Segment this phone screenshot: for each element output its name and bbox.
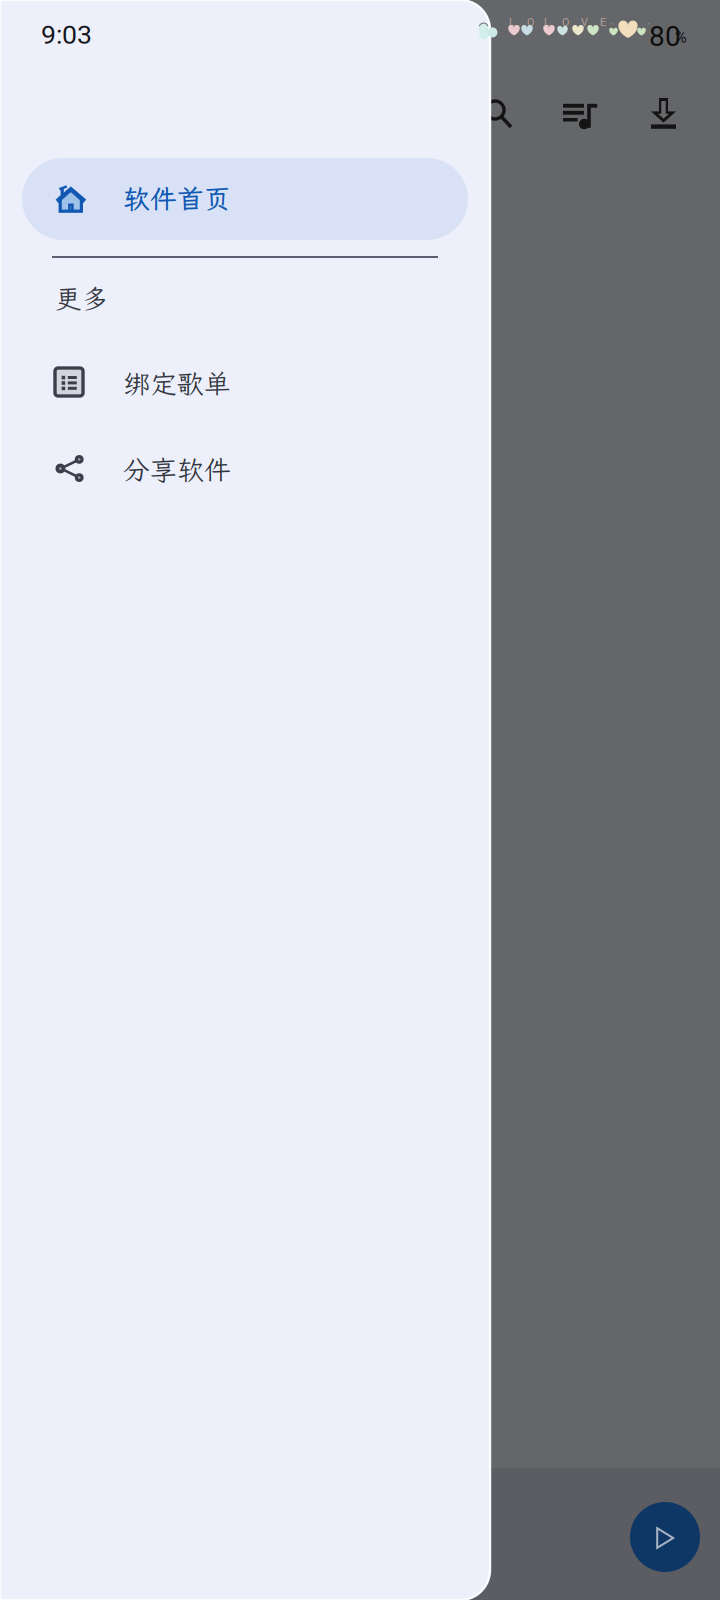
staticText: 软件首页 [123,181,231,216]
button[interactable]: 绑定歌单 [22,343,468,425]
staticText: 9:03 [41,19,92,50]
button[interactable]: Search [470,86,526,142]
button[interactable]: 软件首页 [22,158,468,240]
button[interactable]: Play queue [552,88,608,144]
staticText: 更多 [55,281,109,316]
staticText: · [647,17,650,31]
staticText: L O [509,16,534,28]
staticText: 80 [649,20,681,53]
staticText: 绑定歌单 [123,366,231,401]
button[interactable]: Play [630,1502,700,1572]
button[interactable]: 分享软件 [22,429,468,511]
staticText: · [611,17,614,31]
staticText: 分享软件 [123,452,231,487]
button[interactable]: Downloads [635,86,691,142]
staticText: % [675,28,687,47]
staticText: L O V E [544,16,606,28]
